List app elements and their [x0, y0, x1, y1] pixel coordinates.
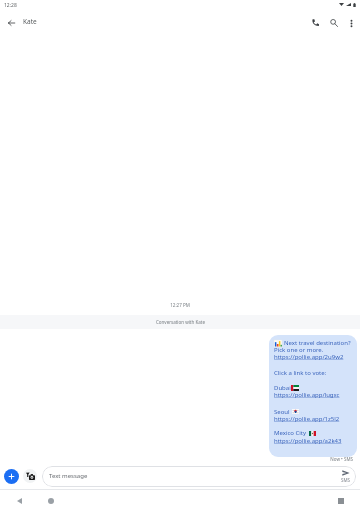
button[interactable]: Call — [306, 13, 324, 31]
button[interactable]: More options — [4, 469, 19, 484]
button[interactable]: Navigate up — [2, 14, 20, 32]
staticText: Next travel destination? — [284, 339, 351, 347]
button[interactable]: Next travel destination? — [269, 335, 357, 457]
staticText: Kate — [23, 17, 37, 26]
button[interactable]: More options — [342, 14, 360, 32]
staticText: Seoul — [274, 408, 290, 416]
staticText: Text message — [49, 472, 88, 480]
button[interactable]: Recent apps — [332, 492, 350, 510]
staticText: 12:28 — [4, 2, 17, 9]
staticText: https://pollie.app/lugxc — [274, 391, 340, 399]
staticText: https://pollie.app/2u9w2 — [274, 353, 344, 361]
staticText: Now • SMS — [0, 456, 353, 462]
staticText: Dubai — [274, 384, 291, 392]
staticText: 12:27 PM — [0, 302, 360, 308]
staticText: Conversation with Kate — [156, 319, 205, 325]
button[interactable]: Send SMS — [339, 468, 353, 480]
staticText: SMS — [341, 477, 351, 483]
staticText: Mexico City — [274, 429, 307, 437]
button[interactable]: Text message — [42, 466, 356, 487]
staticText: https://pollie.app/a2k43 — [274, 437, 342, 445]
staticText: Click a link to vote: — [274, 369, 327, 377]
button[interactable]: Back — [10, 492, 28, 510]
button[interactable]: Home — [42, 492, 60, 510]
button[interactable]: Camera — [23, 469, 37, 483]
staticText: Pick one or more. — [274, 346, 324, 354]
staticText: https://pollie.app/1z5l2 — [274, 415, 340, 423]
button[interactable]: Search — [325, 14, 343, 32]
